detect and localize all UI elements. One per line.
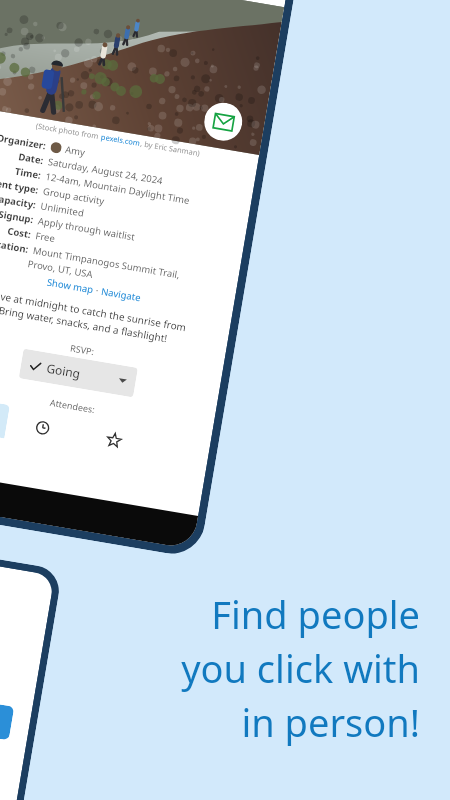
staticText: Cost: [0, 218, 32, 241]
button[interactable]: pexels.com [100, 132, 141, 148]
staticText: Location: [0, 233, 29, 256]
staticText: Mount Timpanogos Summit Trail, [32, 244, 181, 282]
button[interactable]: Attendee filter [75, 417, 152, 463]
button[interactable]: Navigate [100, 285, 142, 304]
staticText: Date: [0, 144, 44, 167]
staticText: you click with [181, 642, 420, 694]
staticText: Time: [0, 159, 42, 182]
staticText: Saturday, August 24, 2024 [47, 155, 164, 187]
staticText: Provo, UT, USA [27, 257, 94, 281]
button[interactable]: Message organizer [201, 100, 245, 144]
staticText: 12-4am, Mountain Daylight Time [45, 170, 191, 207]
staticText: Capacity: [0, 189, 37, 211]
button[interactable]: Going [19, 348, 138, 397]
staticText: Event type: [0, 174, 39, 197]
staticText: Signup: [0, 203, 34, 226]
button[interactable]: Show map [46, 276, 94, 296]
button[interactable]: RSVP [0, 687, 14, 740]
staticText: Find people [211, 588, 420, 640]
staticText: Going [45, 360, 82, 381]
staticText: RSVP: [69, 341, 95, 357]
button[interactable]: Attendee filter [4, 405, 81, 451]
staticText: Organizer: [0, 129, 47, 152]
staticText: · [92, 283, 102, 298]
staticText: , by Eric Sanman) [140, 138, 201, 158]
staticText: in person! [241, 696, 420, 748]
staticText: We'll leave at midnight to catch the sun… [0, 283, 188, 334]
staticText: Free [35, 229, 56, 245]
staticText: the top. Bring water, snacks, and a flas… [0, 296, 168, 345]
staticText: Apply through waitlist [37, 214, 136, 243]
staticText: Group activity [42, 185, 105, 208]
staticText: Unlimited [40, 199, 85, 220]
staticText: Attendees: [49, 396, 96, 415]
button[interactable]: Going [0, 393, 10, 439]
staticText: Amy [64, 143, 86, 159]
staticText: (Stock photo from [35, 121, 102, 141]
